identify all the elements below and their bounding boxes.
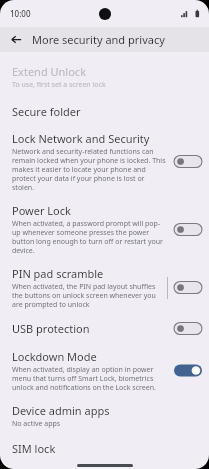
staticText: More security and privacy <box>32 32 165 47</box>
button[interactable]: SIM lock <box>0 435 209 462</box>
staticText: Network and security-related functions c… <box>12 147 167 192</box>
staticText: Power Lock <box>12 203 71 218</box>
button[interactable]: Power Lock <box>173 222 203 237</box>
staticText: Extend Unlock <box>12 64 87 79</box>
button[interactable]: Lock Network and Security <box>0 125 209 197</box>
button[interactable]: Secure folder <box>0 98 209 125</box>
button[interactable]: Back <box>7 30 26 49</box>
staticText: Secure folder <box>12 104 81 119</box>
button[interactable]: PIN pad scramble <box>0 260 209 314</box>
button[interactable]: Extend Unlock <box>0 60 209 98</box>
staticText: Lock Network and Security <box>12 131 150 146</box>
staticText: 10:00 <box>10 8 31 19</box>
button[interactable]: PIN pad scramble <box>173 280 203 295</box>
button[interactable]: Lock Network and Security <box>173 154 203 169</box>
button[interactable]: Power Lock <box>0 197 209 260</box>
staticText: When activated, the PIN pad layout shuff… <box>12 282 161 309</box>
staticText: When activated, a password prompt will p… <box>12 219 167 255</box>
button[interactable]: Device admin apps <box>0 397 209 435</box>
staticText: Device admin apps <box>12 403 110 418</box>
button[interactable]: USB protection <box>173 321 203 336</box>
staticText: USB protection <box>12 321 90 336</box>
staticText: To use, first set a screen lock <box>12 80 106 90</box>
staticText: When activated, display an option in pow… <box>12 365 167 392</box>
staticText: No active apps <box>12 419 61 429</box>
button[interactable]: USB protection <box>0 314 209 343</box>
button[interactable]: Lockdown Mode <box>173 363 203 378</box>
button[interactable]: Lockdown Mode <box>0 343 209 397</box>
staticText: Lockdown Mode <box>12 349 97 364</box>
staticText: SIM lock <box>12 441 56 456</box>
staticText: PIN pad scramble <box>12 266 104 281</box>
